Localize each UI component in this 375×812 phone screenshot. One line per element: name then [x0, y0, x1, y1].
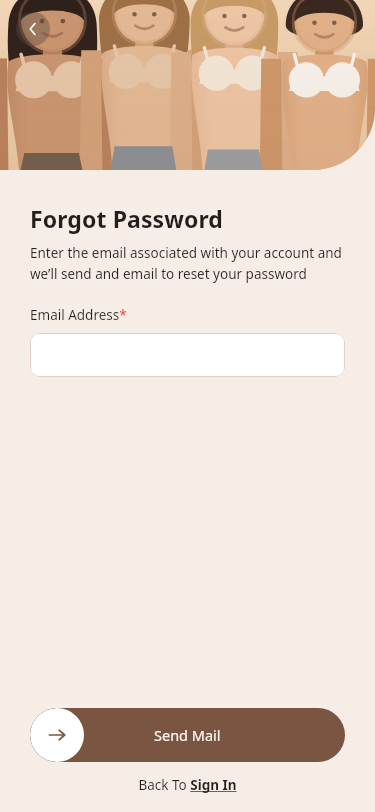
staticText: Send Mail [154, 725, 221, 745]
staticText: Email Address* [30, 306, 127, 324]
staticText: Forgot Password [30, 203, 223, 234]
button[interactable] [30, 333, 345, 377]
button[interactable]: Send Mail [30, 708, 345, 762]
staticText: Back To Sign In [138, 776, 237, 794]
staticText: Enter the email associated with your acc… [30, 244, 345, 283]
button[interactable]: Back To Sign In [138, 776, 237, 794]
other: Send [30, 708, 84, 762]
button[interactable]: Back [16, 12, 50, 46]
